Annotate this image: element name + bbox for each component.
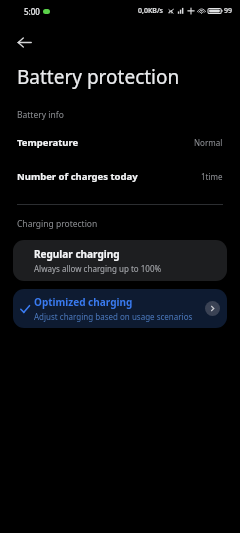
- staticText: Always allow charging up to 100%: [34, 263, 162, 274]
- staticText: Regular charging: [34, 247, 120, 261]
- button[interactable]: Number of charges today: [0, 168, 240, 185]
- staticText: 0,0KB/s: [138, 6, 164, 16]
- staticText: Adjust charging based on usage scenarios: [34, 311, 193, 322]
- button[interactable]: Optimized charging: [13, 289, 227, 328]
- staticText: 1time: [201, 171, 223, 182]
- button[interactable]: Back: [10, 28, 38, 56]
- button[interactable]: Temperature: [0, 134, 240, 151]
- staticText: Number of charges today: [17, 170, 201, 183]
- staticText: Battery info: [17, 109, 64, 121]
- staticText: Charging protection: [17, 218, 98, 230]
- button[interactable]: More settings: [205, 301, 220, 316]
- staticText: 5:00: [24, 6, 40, 17]
- staticText: Optimized charging: [34, 295, 133, 309]
- staticText: 99: [224, 6, 233, 16]
- staticText: Temperature: [17, 136, 194, 149]
- button[interactable]: Regular charging: [13, 240, 227, 281]
- staticText: Battery protection: [17, 64, 180, 90]
- staticText: Normal: [194, 137, 223, 148]
